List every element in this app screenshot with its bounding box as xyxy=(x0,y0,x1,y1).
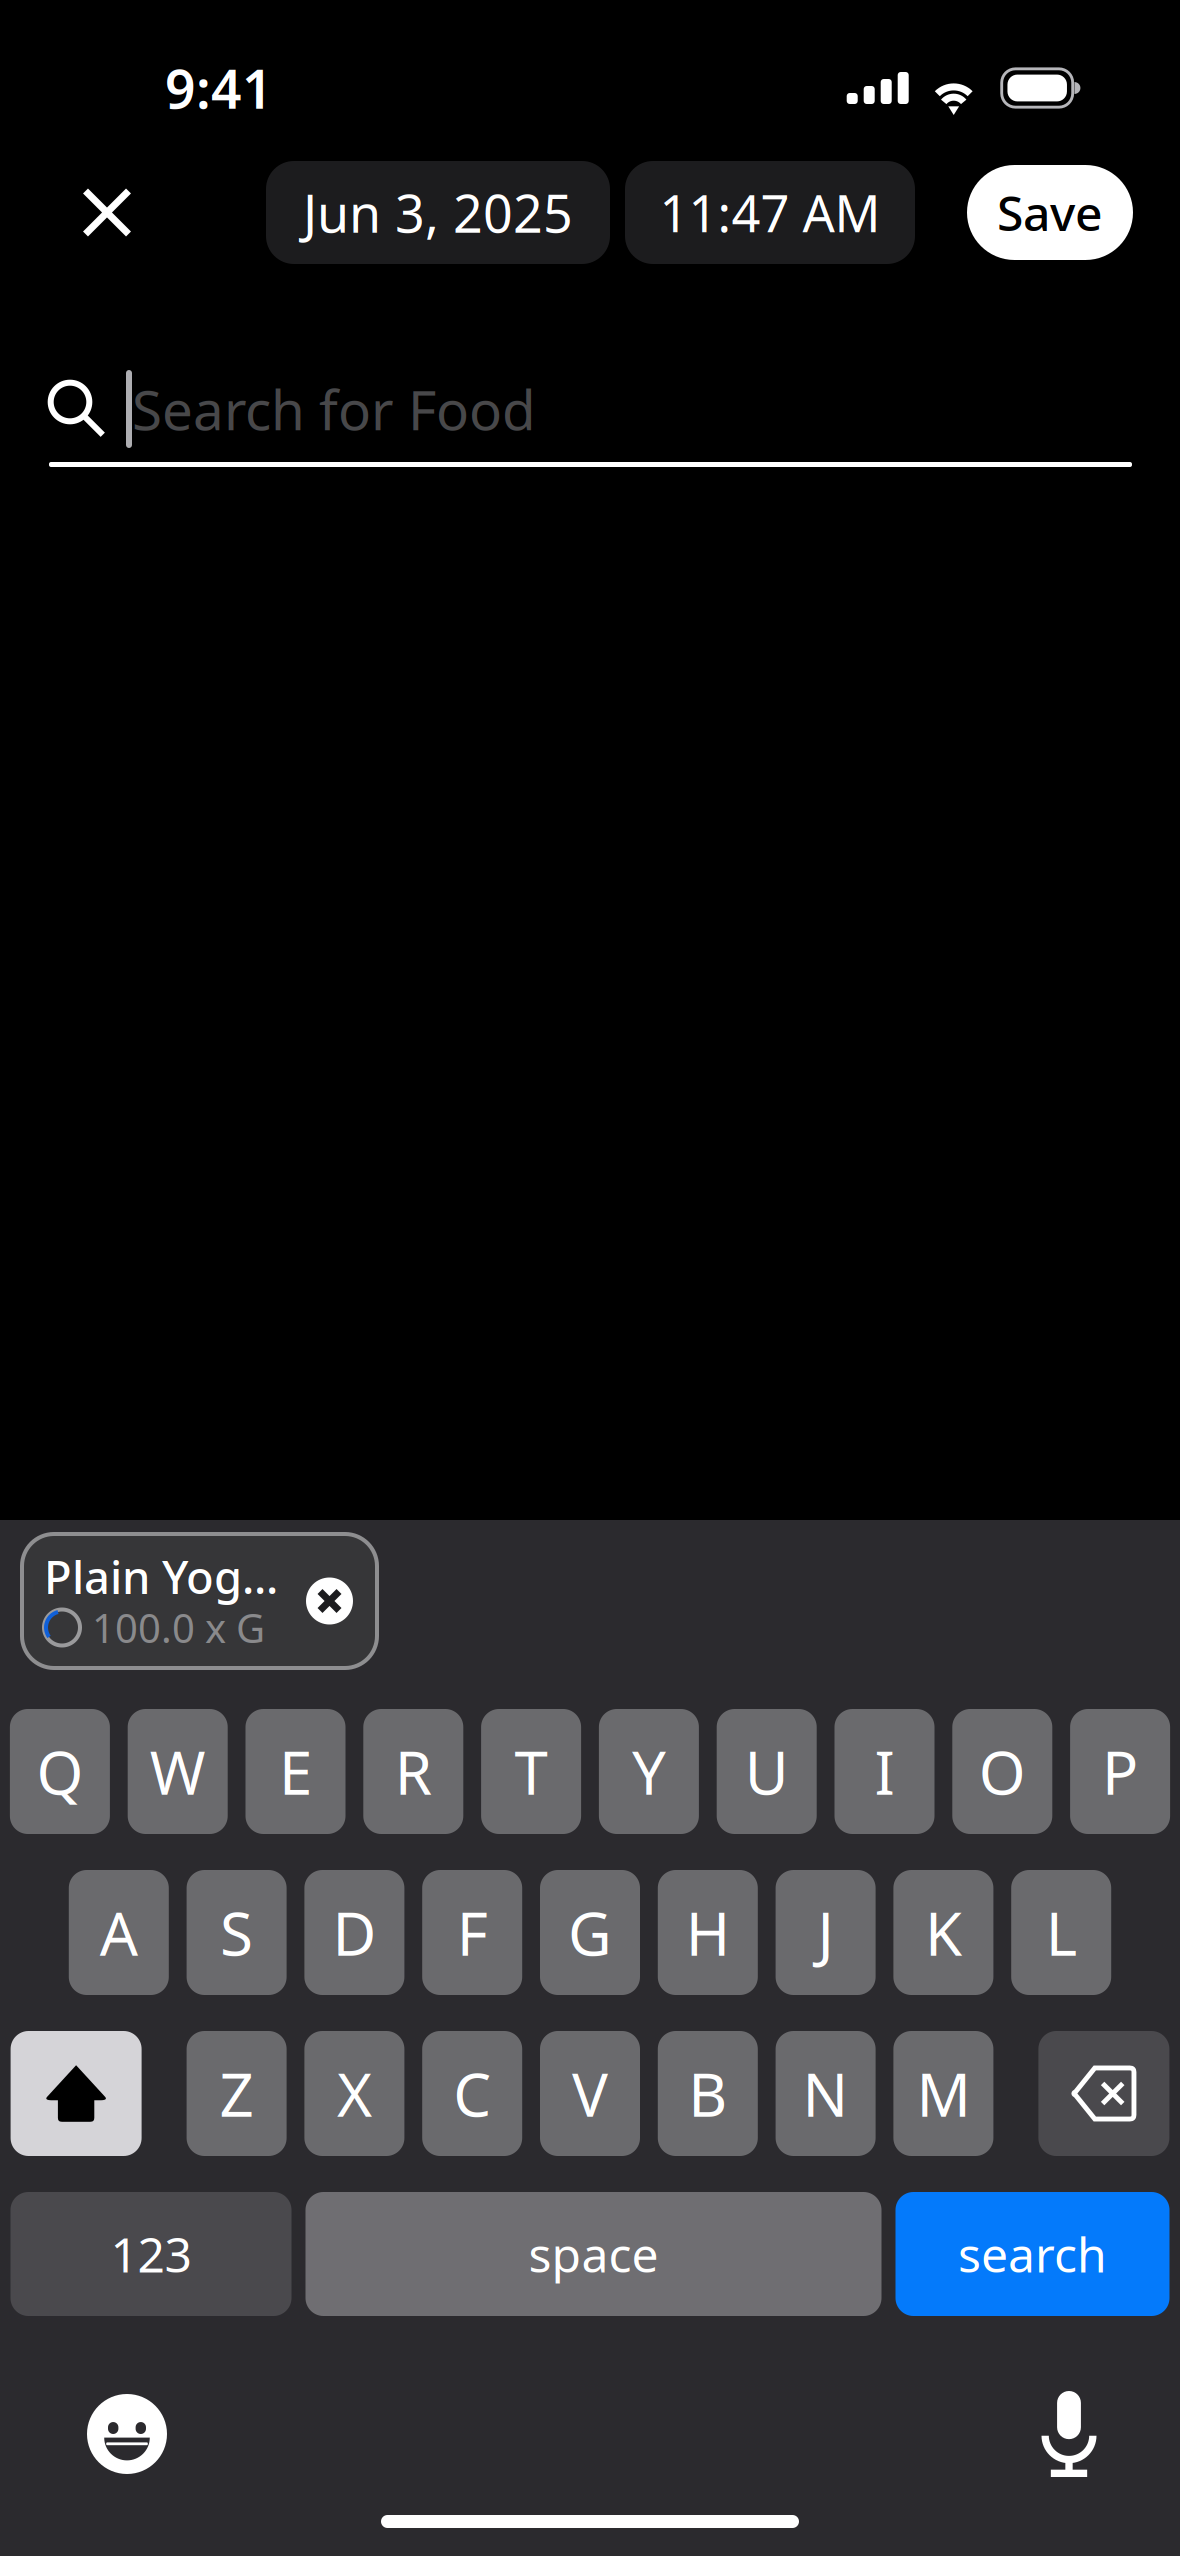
staticText: L xyxy=(1046,1893,1077,1972)
staticText: G xyxy=(568,1893,612,1972)
button[interactable]: T xyxy=(481,1709,581,1834)
button[interactable]: Y xyxy=(599,1709,699,1834)
button[interactable]: S xyxy=(187,1870,287,1995)
button[interactable]: Close xyxy=(53,161,161,264)
button[interactable]: J xyxy=(776,1870,876,1995)
button[interactable]: B xyxy=(658,2031,758,2156)
staticText: Save xyxy=(997,181,1103,244)
staticText: C xyxy=(453,2054,491,2133)
button[interactable]: Shift xyxy=(11,2031,142,2156)
button[interactable]: P xyxy=(1070,1709,1170,1834)
button[interactable]: C xyxy=(422,2031,522,2156)
staticText: B xyxy=(688,2054,727,2133)
staticText: space xyxy=(528,2222,658,2286)
button[interactable]: space xyxy=(305,2192,881,2316)
button[interactable]: L xyxy=(1011,1870,1111,1995)
button[interactable]: R xyxy=(363,1709,463,1834)
button[interactable]: D xyxy=(304,1870,404,1995)
button[interactable]: K xyxy=(893,1870,993,1995)
staticText: Jun 3, 2025 xyxy=(303,178,573,247)
button[interactable]: 123 xyxy=(10,2192,291,2316)
button[interactable]: E xyxy=(245,1709,345,1834)
button[interactable]: Dictate xyxy=(1009,2374,1129,2494)
button[interactable]: A xyxy=(69,1870,169,1995)
staticText: J xyxy=(818,1893,834,1972)
staticText: Y xyxy=(632,1732,666,1811)
staticText: V xyxy=(572,2054,608,2133)
staticText: 11:47 AM xyxy=(659,179,880,246)
staticText: Plain Yog... xyxy=(44,1546,278,1607)
button[interactable]: N xyxy=(776,2031,876,2156)
staticText: 123 xyxy=(110,2222,191,2286)
button[interactable]: O xyxy=(952,1709,1052,1834)
staticText: E xyxy=(279,1732,312,1811)
staticText: Search for Food xyxy=(132,373,536,445)
staticText: N xyxy=(803,2054,849,2133)
button[interactable]: Emoji keyboard xyxy=(67,2374,187,2494)
staticText: search xyxy=(958,2222,1107,2286)
button[interactable]: Delete xyxy=(1038,2031,1169,2156)
button[interactable]: F xyxy=(422,1870,522,1995)
staticText: T xyxy=(515,1732,548,1811)
staticText: D xyxy=(332,1893,376,1972)
staticText: H xyxy=(686,1893,730,1972)
staticText: Q xyxy=(36,1732,83,1811)
staticText: K xyxy=(925,1893,962,1972)
button[interactable]: Jun 3, 2025 xyxy=(266,161,610,264)
button[interactable]: search xyxy=(895,2192,1169,2316)
staticText: U xyxy=(745,1732,789,1811)
staticText: X xyxy=(337,2054,372,2133)
button[interactable]: Save xyxy=(967,165,1133,260)
button[interactable]: H xyxy=(658,1870,758,1995)
button[interactable]: U xyxy=(717,1709,817,1834)
staticText: R xyxy=(395,1732,432,1811)
button[interactable]: X xyxy=(304,2031,404,2156)
button[interactable]: 11:47 AM xyxy=(625,161,915,264)
staticText: 9:41 xyxy=(165,53,273,123)
staticText: O xyxy=(979,1732,1026,1811)
button[interactable]: I xyxy=(834,1709,934,1834)
button[interactable]: W xyxy=(128,1709,228,1834)
button[interactable]: Z xyxy=(187,2031,287,2156)
staticText: F xyxy=(457,1893,488,1972)
staticText: 100.0 x G xyxy=(92,1601,265,1654)
button[interactable]: Plain Yog... xyxy=(22,1534,377,1668)
staticText: A xyxy=(100,1893,138,1972)
button[interactable]: Q xyxy=(10,1709,110,1834)
staticText: P xyxy=(1102,1732,1138,1811)
button[interactable]: M xyxy=(893,2031,993,2156)
button[interactable]: V xyxy=(540,2031,640,2156)
staticText: S xyxy=(220,1893,253,1972)
staticText: W xyxy=(150,1732,206,1811)
staticText: M xyxy=(916,2054,970,2133)
staticText: I xyxy=(874,1732,894,1811)
button[interactable]: G xyxy=(540,1870,640,1995)
staticText: Z xyxy=(220,2054,254,2133)
